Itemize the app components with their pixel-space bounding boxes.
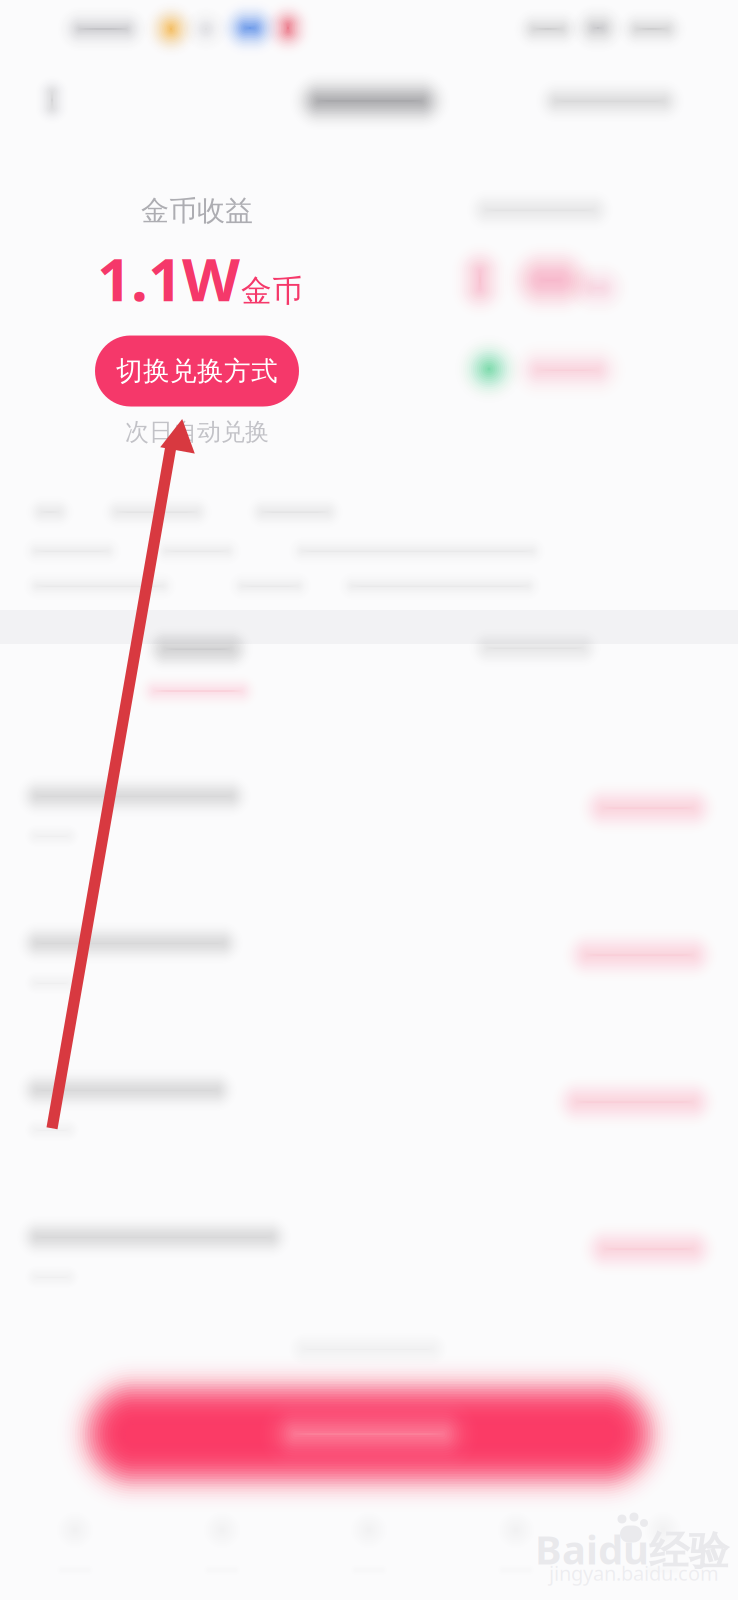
button[interactable]	[0, 897, 738, 1043]
staticText: 1.1W	[97, 238, 240, 318]
button[interactable]	[435, 614, 635, 724]
button[interactable]: Tab	[296, 1496, 442, 1600]
staticText: jingyan.baidu.com	[549, 1560, 719, 1586]
button[interactable]	[98, 615, 298, 725]
button[interactable]: 切换兑换方式	[95, 335, 299, 406]
button[interactable]: Tab	[149, 1496, 295, 1600]
button[interactable]: Tab	[443, 1496, 589, 1600]
button[interactable]	[0, 750, 738, 896]
staticText: 切换兑换方式	[116, 355, 278, 387]
staticText: 金币收益	[141, 194, 253, 228]
button[interactable]	[0, 1191, 738, 1337]
button[interactable]: Tab	[590, 1496, 736, 1600]
button[interactable]	[19, 1334, 719, 1534]
button[interactable]	[510, 64, 710, 138]
staticText: 金币	[241, 272, 303, 310]
button[interactable]	[270, 64, 470, 138]
button[interactable]	[0, 1044, 738, 1190]
button[interactable]: Back	[10, 63, 94, 137]
staticText: Baidu经验	[535, 1522, 729, 1576]
staticText: 次日自动兑换	[125, 417, 269, 447]
